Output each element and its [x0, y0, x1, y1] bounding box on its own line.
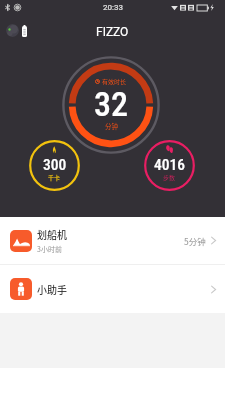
- button[interactable]: Device: [6, 24, 19, 37]
- button[interactable]: 步数: [144, 140, 195, 191]
- staticText: 300: [43, 156, 67, 174]
- staticText: 分钟: [105, 121, 118, 130]
- button[interactable]: 千卡: [29, 140, 80, 191]
- staticText: 有效时长: [102, 77, 127, 86]
- staticText: 小助手: [37, 282, 211, 296]
- staticText: 千卡: [48, 173, 61, 182]
- button[interactable]: 小助手: [0, 265, 225, 313]
- staticText: 4016: [154, 156, 185, 174]
- staticText: 划船机: [37, 227, 67, 241]
- staticText: FIZZO: [96, 25, 129, 39]
- staticText: 20:33: [103, 3, 123, 12]
- button[interactable]: 划船机: [0, 217, 225, 264]
- staticText: 32: [94, 84, 128, 124]
- staticText: 5分钟: [184, 235, 206, 247]
- staticText: 步数: [163, 173, 176, 182]
- staticText: 3小时前: [37, 244, 62, 254]
- button[interactable]: Battery: [22, 25, 27, 37]
